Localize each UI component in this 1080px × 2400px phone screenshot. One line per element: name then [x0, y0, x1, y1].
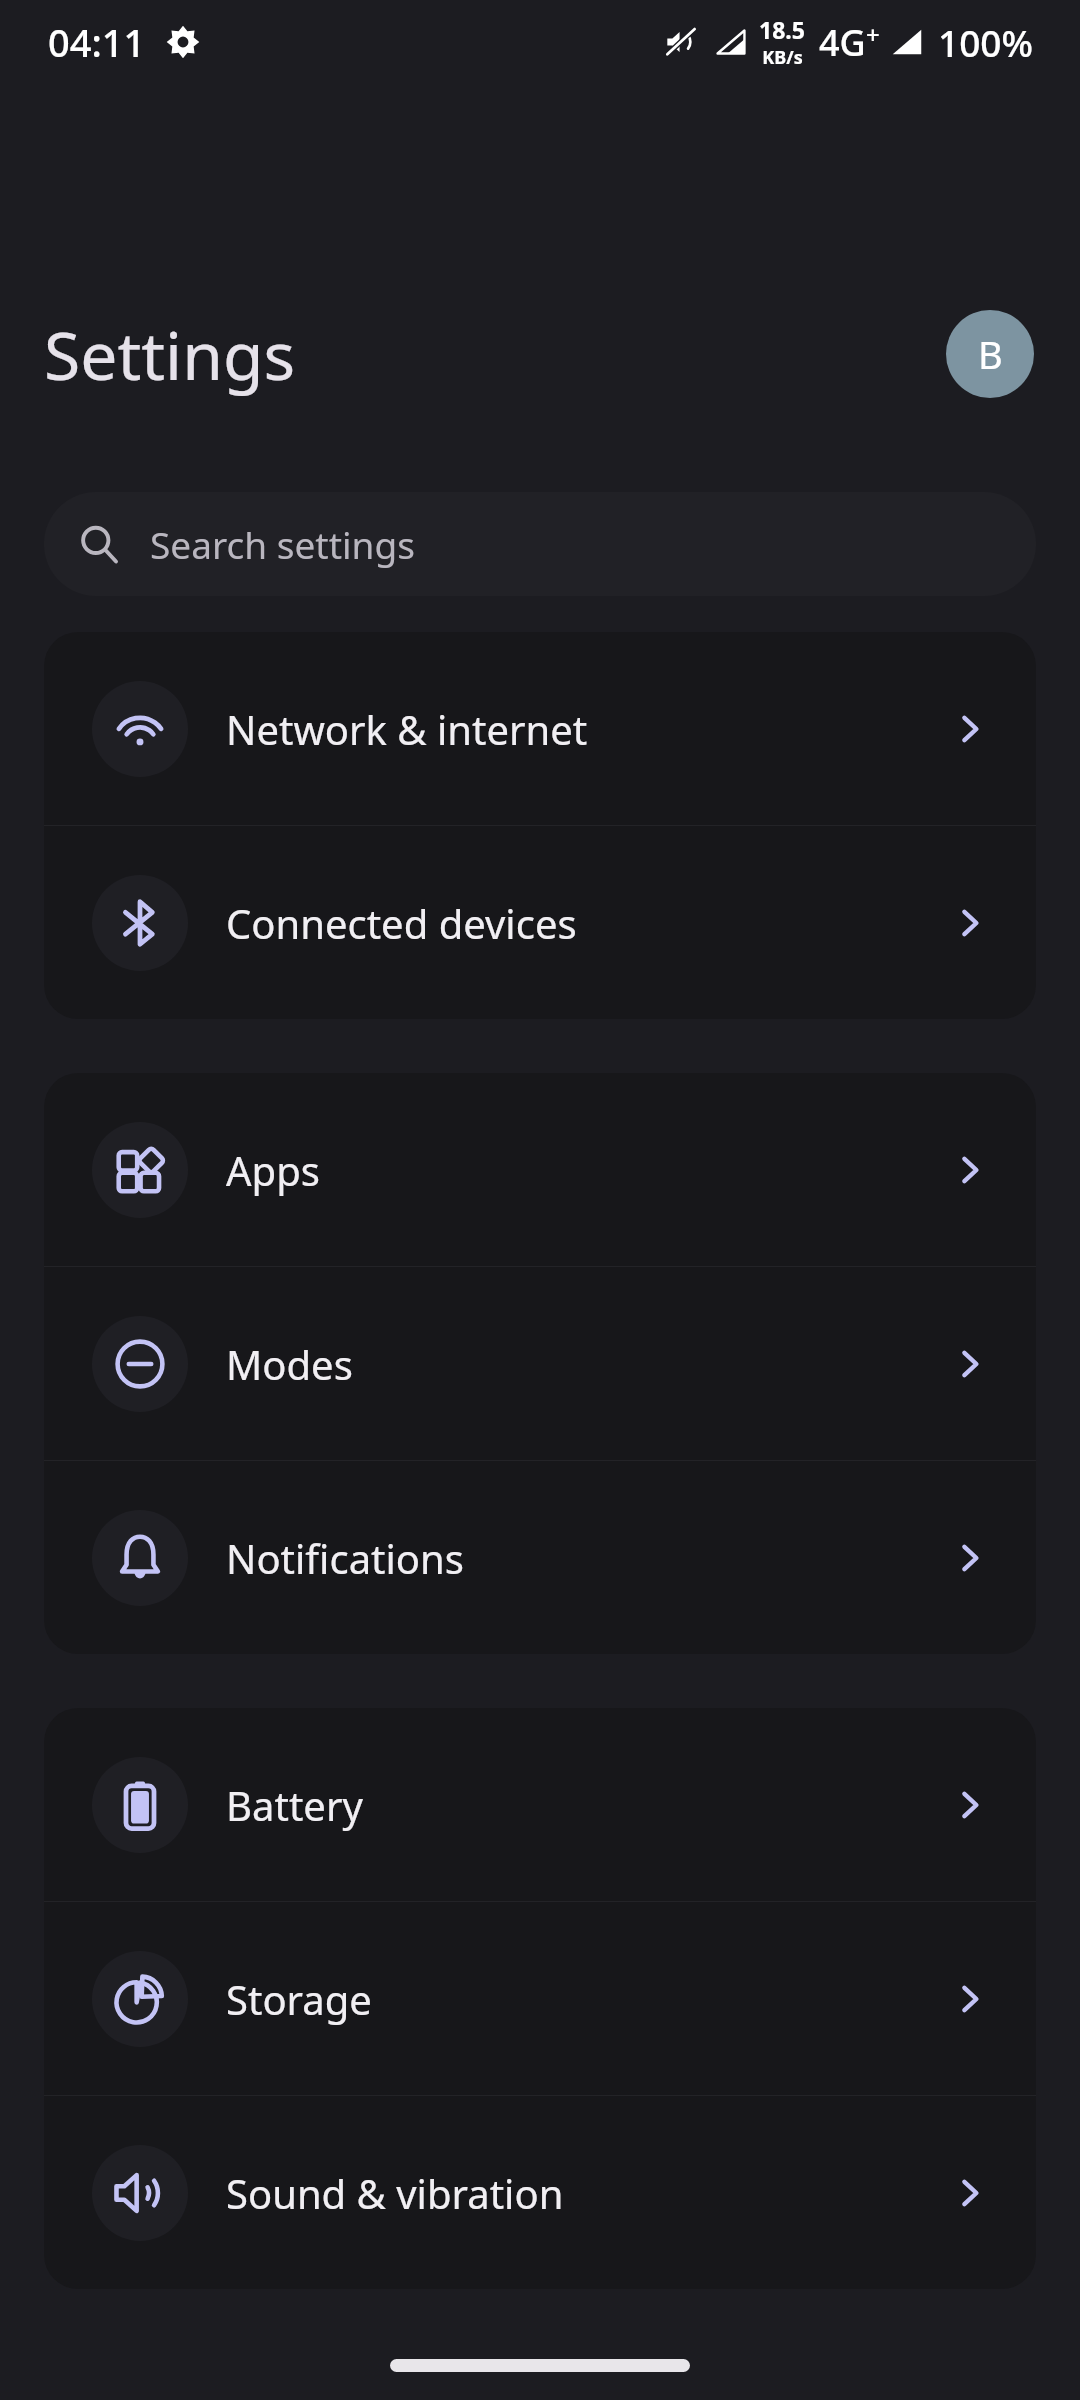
button[interactable]: Sound & vibration	[44, 2096, 1036, 2289]
staticText: Modes	[226, 1337, 353, 1391]
button[interactable]: Notifications	[44, 1461, 1036, 1654]
staticText: Battery	[226, 1778, 363, 1832]
staticText: KB/s	[762, 45, 803, 70]
staticText: 4G	[819, 18, 866, 67]
button[interactable]: Search settings	[44, 492, 1036, 596]
button[interactable]: Account	[946, 310, 1034, 398]
button[interactable]: Storage	[44, 1902, 1036, 2095]
button[interactable]: Apps	[44, 1073, 1036, 1266]
staticText: Settings	[44, 309, 296, 399]
staticText: 04:11	[48, 16, 146, 68]
staticText: 18.5	[759, 14, 805, 45]
staticText: Connected devices	[226, 896, 577, 950]
button[interactable]: Modes	[44, 1267, 1036, 1460]
button[interactable]: Battery	[44, 1708, 1036, 1901]
staticText: Storage	[226, 1972, 372, 2026]
staticText: +	[866, 18, 880, 51]
staticText: Search settings	[150, 519, 415, 569]
button[interactable]: Network & internet	[44, 632, 1036, 825]
staticText: 100%	[938, 17, 1034, 67]
staticText: Sound & vibration	[226, 2166, 564, 2220]
staticText: Notifications	[226, 1531, 464, 1585]
button[interactable]: Connected devices	[44, 826, 1036, 1019]
staticText: Apps	[226, 1143, 320, 1197]
staticText: B	[978, 328, 1003, 380]
staticText: Network & internet	[226, 702, 588, 756]
